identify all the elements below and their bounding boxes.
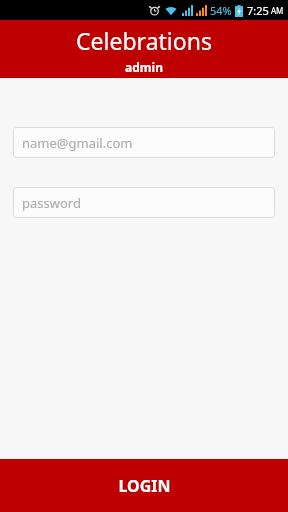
button[interactable]: name@gmail.com (13, 127, 275, 158)
button[interactable]: password (13, 187, 275, 218)
staticText: 7:25 (247, 3, 269, 18)
staticText: 54% (210, 3, 232, 18)
staticText: Celebrations (76, 25, 212, 56)
staticText: AM (271, 5, 284, 16)
staticText: name@gmail.com (22, 134, 133, 152)
button[interactable]: Login (0, 459, 288, 512)
staticText: LOGIN (118, 475, 171, 497)
staticText: admin (125, 59, 163, 75)
staticText: password (22, 194, 81, 212)
